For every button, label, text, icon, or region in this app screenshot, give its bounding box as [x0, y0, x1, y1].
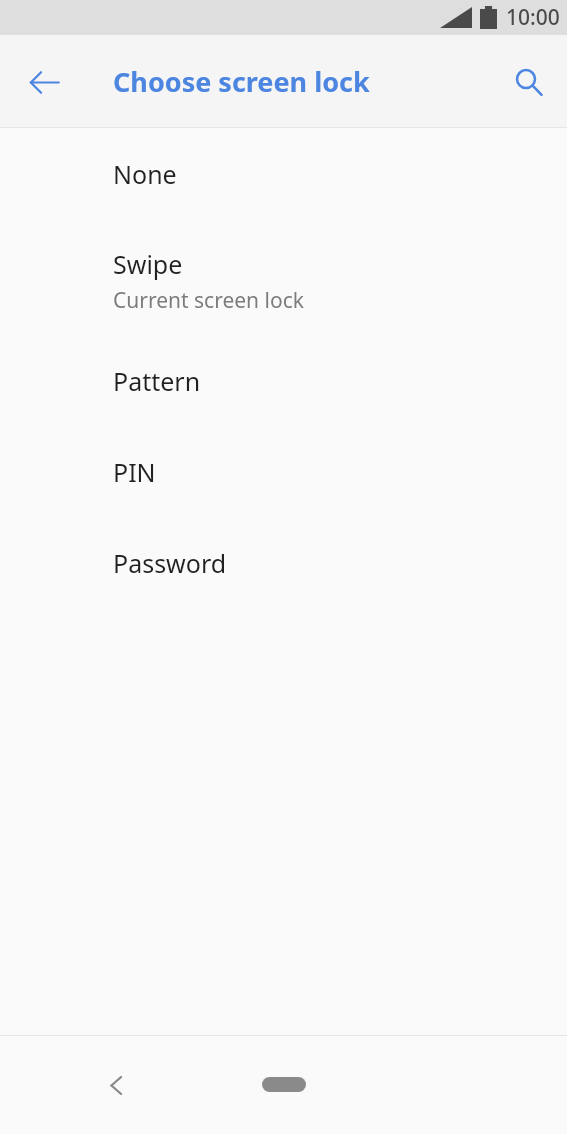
button[interactable]: PIN	[0, 425, 567, 516]
staticText: PIN	[113, 455, 156, 489]
button[interactable]: None	[0, 128, 567, 218]
button[interactable]: Password	[0, 516, 567, 607]
button[interactable]: Swipe	[0, 218, 567, 337]
staticText: Password	[113, 546, 227, 580]
button[interactable]: Search	[500, 54, 556, 110]
staticText: Swipe	[113, 247, 183, 281]
button[interactable]: Back	[88, 1057, 144, 1113]
button[interactable]: Pattern	[0, 337, 567, 425]
staticText: None	[113, 157, 177, 191]
staticText: Pattern	[113, 364, 201, 398]
staticText: Current screen lock	[113, 286, 304, 315]
staticText: 10:00	[506, 3, 560, 32]
staticText: Choose screen lock	[113, 63, 370, 100]
button[interactable]: Home	[246, 1063, 322, 1105]
button[interactable]: Back	[16, 54, 72, 110]
